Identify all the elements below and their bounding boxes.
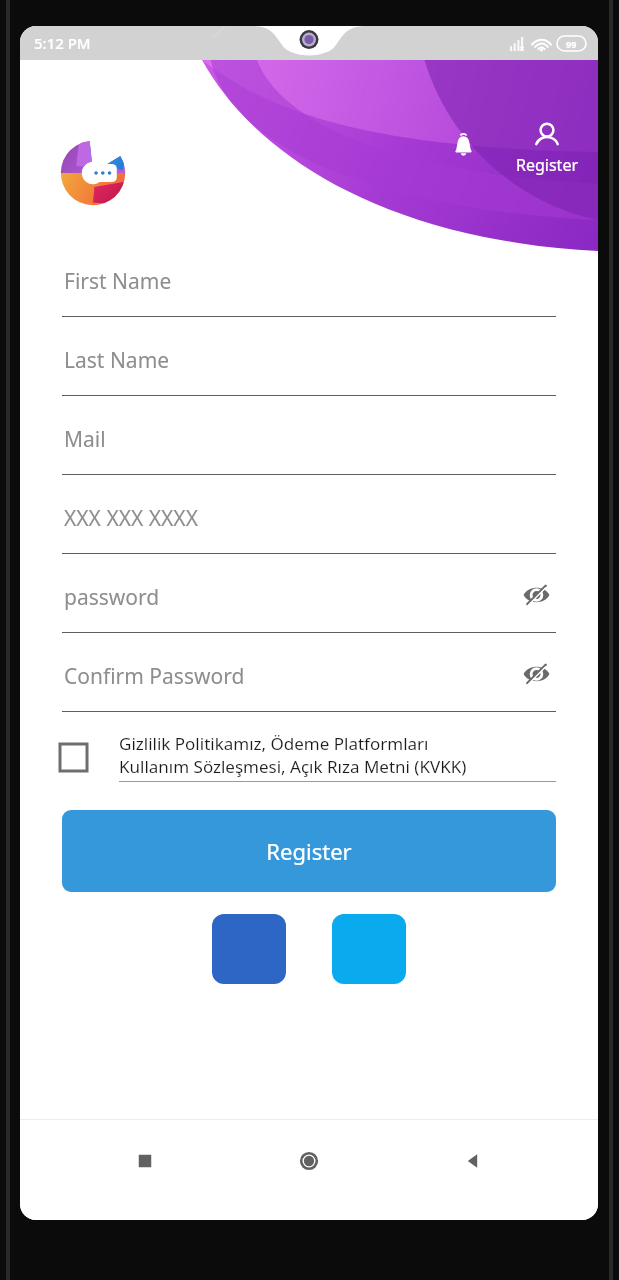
staticText: 99 [566,38,577,50]
button[interactable]: Recent apps [116,1132,174,1190]
staticText: Confirm Password [64,662,245,691]
button[interactable]: Register [510,122,584,176]
button[interactable]: First Name [62,238,556,317]
button[interactable]: XXX XXX XXXX [62,475,556,554]
button[interactable]: Mail [62,396,556,475]
staticText: Register [266,836,352,866]
staticText: password [64,583,160,612]
button[interactable]: Home [280,1132,338,1190]
staticText: XXX XXX XXXX [64,504,198,533]
button[interactable]: Toggle password visibility [516,575,556,615]
staticText: Gizlilik Politikamız, Ödeme Platformları [119,732,429,755]
staticText: Register [516,154,579,176]
staticText: Last Name [64,346,170,375]
button[interactable]: Back [444,1132,502,1190]
staticText: First Name [64,267,172,296]
staticText: Kullanım Sözleşmesi, Açık Rıza Metni (KV… [119,755,467,778]
button[interactable]: Notifications [440,122,486,168]
button[interactable]: Last Name [62,317,556,396]
button[interactable]: Confirm Password [62,633,556,712]
button[interactable]: Register [62,810,556,892]
button[interactable]: Sign up with Facebook [212,914,286,984]
button[interactable]: Toggle password visibility [516,654,556,694]
button[interactable]: Accept terms [62,732,556,782]
button[interactable]: password [62,554,556,633]
staticText: Mail [64,425,106,454]
staticText: 5:12 PM [34,33,91,53]
button[interactable]: Sign up with Twitter [332,914,406,984]
button[interactable]: Accept terms [60,744,87,771]
